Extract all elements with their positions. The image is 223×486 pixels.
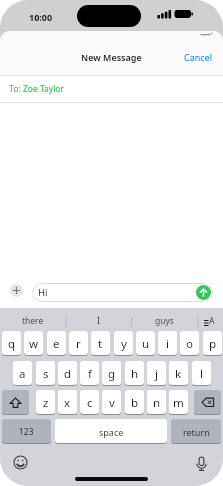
staticText: l [200,366,203,382]
button[interactable]: j [147,361,166,385]
button[interactable]: w [24,331,43,355]
button[interactable] [2,390,29,414]
button[interactable] [194,390,221,414]
staticText: Zoe Taylor [23,83,65,95]
button[interactable]: q [2,331,21,355]
staticText: New Message [81,51,142,63]
staticText: h [131,366,139,382]
button[interactable]: h [125,361,144,385]
staticText: a [19,366,26,382]
staticText: t [98,336,103,352]
button[interactable]: b [125,390,144,414]
staticText: d [64,366,72,382]
staticText: i [166,336,169,352]
staticText: j [155,366,158,382]
staticText: r [76,336,81,352]
staticText: I [97,315,100,327]
button[interactable]: y [114,331,133,355]
staticText: e [53,336,60,352]
staticText: n [153,395,161,411]
button[interactable]: s [36,361,55,385]
button[interactable]: i [158,331,177,355]
staticText: b [131,395,139,411]
button[interactable]: v [102,390,121,414]
button[interactable]: l [192,361,211,385]
button[interactable]: g [102,361,121,385]
button[interactable]: I [66,311,131,330]
staticText: Cancel [184,51,213,63]
button[interactable]: p [203,331,222,355]
staticText: o [186,336,193,352]
button[interactable]: there [0,311,66,330]
button[interactable]: return [171,419,221,443]
staticText: return [183,426,210,438]
staticText: f [88,366,92,382]
button[interactable]: n [147,390,166,414]
staticText: m [173,395,184,411]
button[interactable]: Cancel [184,51,213,63]
button[interactable]: z [36,390,55,414]
button[interactable]: a [13,361,32,385]
staticText: y [121,336,127,352]
button[interactable]: t [91,331,110,355]
staticText: Hi [38,286,48,299]
staticText: guys [155,315,174,327]
staticText: v [109,395,115,411]
button[interactable]: d [58,361,77,385]
button[interactable]: guys [131,311,198,330]
button[interactable]: x [58,390,77,414]
staticText: q [8,336,16,352]
button[interactable]: space [55,419,167,443]
staticText: z [43,395,49,411]
button[interactable]: 123 [2,419,51,443]
button[interactable]: m [169,390,188,414]
staticText: u [142,336,150,352]
staticText: 123 [19,426,34,438]
staticText: c [87,395,93,411]
button[interactable] [196,285,211,300]
button[interactable]: e [47,331,66,355]
button[interactable]: f [80,361,99,385]
staticText: To: [9,83,23,95]
staticText: there [22,315,44,327]
button[interactable]: c [80,390,99,414]
staticText: w [29,336,39,352]
staticText: s [43,366,49,382]
button[interactable]: u [136,331,155,355]
staticText: g [108,366,116,382]
staticText: A [209,315,215,327]
staticText: 10:00 [29,11,53,23]
staticText: k [175,366,182,382]
staticText: space [99,426,124,438]
staticText: x [64,395,71,411]
button[interactable]: r [69,331,88,355]
button[interactable] [10,284,23,297]
button[interactable]: o [180,331,199,355]
button[interactable]: To: [0,76,223,102]
button[interactable]: k [169,361,188,385]
staticText: p [209,336,217,352]
